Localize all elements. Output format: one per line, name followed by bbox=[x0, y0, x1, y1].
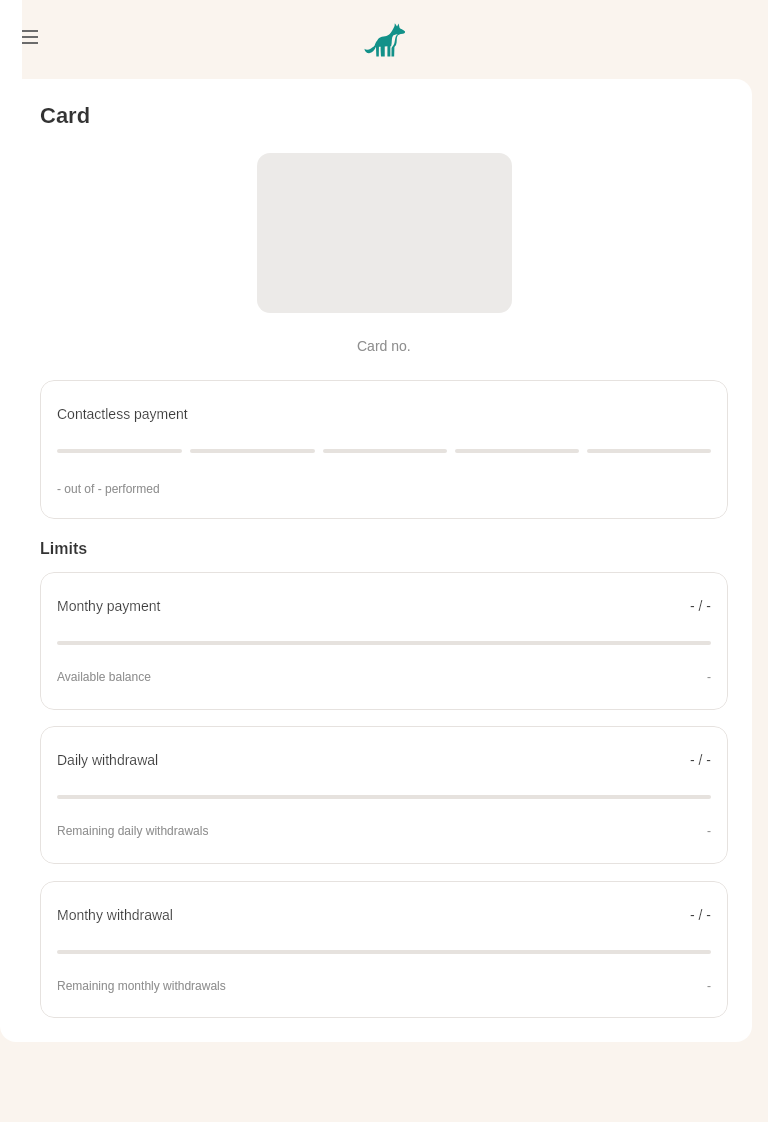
other: App logo bbox=[364, 23, 405, 57]
staticText: - bbox=[707, 979, 711, 992]
staticText: - / - bbox=[690, 752, 711, 768]
staticText: - bbox=[707, 824, 711, 837]
staticText: Remaining monthly withdrawals bbox=[57, 979, 226, 992]
staticText: Monthy payment bbox=[57, 598, 161, 614]
staticText: - / - bbox=[690, 907, 711, 923]
staticText: Monthy withdrawal bbox=[57, 907, 173, 923]
button[interactable]: Open navigation menu bbox=[10, 19, 50, 55]
staticText: Daily withdrawal bbox=[57, 752, 159, 768]
staticText: - out of - performed bbox=[57, 482, 160, 495]
button[interactable]: Monthy withdrawal bbox=[40, 881, 728, 1018]
staticText: Limits bbox=[40, 540, 88, 558]
button[interactable]: Contactless payment bbox=[40, 380, 728, 519]
staticText: - / - bbox=[690, 598, 711, 614]
staticText: - bbox=[707, 670, 711, 683]
button[interactable]: Monthy payment bbox=[40, 572, 728, 710]
button[interactable]: Daily withdrawal bbox=[40, 726, 728, 864]
staticText: Available balance bbox=[57, 670, 151, 683]
staticText: Card bbox=[40, 103, 91, 128]
staticText: Contactless payment bbox=[57, 406, 188, 422]
staticText: Remaining daily withdrawals bbox=[57, 824, 209, 837]
staticText: Card no. bbox=[357, 338, 411, 354]
